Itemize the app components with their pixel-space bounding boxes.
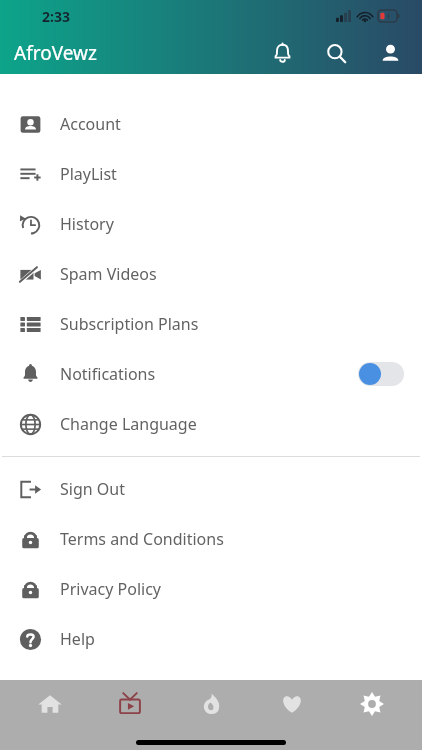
- button[interactable]: Privacy Policy: [0, 564, 422, 614]
- button[interactable]: TV: [99, 680, 161, 728]
- staticText: Privacy Policy: [60, 578, 161, 600]
- staticText: Notifications: [60, 363, 156, 385]
- button[interactable]: Sign Out: [0, 464, 422, 514]
- staticText: 2:33: [42, 7, 70, 26]
- button[interactable]: Trending: [180, 680, 242, 728]
- button[interactable]: Help: [0, 614, 422, 664]
- button[interactable]: Notifications: [0, 349, 422, 399]
- staticText: Spam Videos: [60, 263, 157, 285]
- button[interactable]: Favorites: [261, 680, 323, 728]
- staticText: Subscription Plans: [60, 313, 199, 335]
- button[interactable]: History: [0, 199, 422, 249]
- staticText: History: [60, 213, 114, 235]
- button[interactable]: Notifications: [266, 37, 298, 69]
- staticText: PlayList: [60, 163, 117, 185]
- button[interactable]: Subscription Plans: [0, 299, 422, 349]
- button[interactable]: Terms and Conditions: [0, 514, 422, 564]
- staticText: Terms and Conditions: [60, 528, 224, 550]
- staticText: Account: [60, 113, 121, 135]
- staticText: AfroVewz: [14, 40, 97, 66]
- button[interactable]: Account: [0, 99, 422, 149]
- button[interactable]: Notifications toggle: [358, 362, 404, 386]
- button[interactable]: Home: [19, 680, 81, 728]
- button[interactable]: Spam Videos: [0, 249, 422, 299]
- button[interactable]: Search: [320, 37, 352, 69]
- staticText: Change Language: [60, 413, 197, 435]
- button[interactable]: PlayList: [0, 149, 422, 199]
- button[interactable]: Settings: [341, 680, 403, 728]
- button[interactable]: Change Language: [0, 399, 422, 449]
- staticText: Help: [60, 628, 95, 650]
- button[interactable]: Profile: [374, 37, 406, 69]
- staticText: Sign Out: [60, 478, 125, 500]
